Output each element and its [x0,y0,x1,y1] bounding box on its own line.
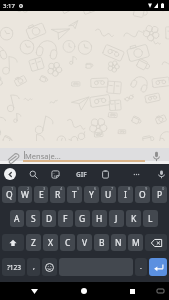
button[interactable]: Comma [27,258,40,276]
staticText: H [96,213,103,225]
staticText: 1 [11,186,14,191]
staticText: T [72,189,77,201]
button[interactable]: Switch keyboard [153,284,167,298]
button[interactable]: L [143,210,158,227]
staticText: G [79,213,86,225]
staticText: B [99,237,105,249]
staticText: V [82,237,88,249]
button[interactable]: Backspace [145,234,167,251]
button[interactable]: Period [135,258,147,276]
button[interactable]: Search [25,166,41,182]
staticText: 0 [162,186,165,191]
staticText: Y [89,189,94,201]
staticText: D [46,213,53,225]
button[interactable]: J [109,210,124,227]
staticText: 9 [145,186,148,191]
staticText: ?123 [7,263,21,272]
button[interactable]: Shift [2,234,24,251]
staticText: , [33,262,35,272]
staticText: L [148,213,153,225]
button[interactable]: N [111,234,126,251]
button[interactable]: Stickers [47,166,63,182]
staticText: 4 [60,186,63,191]
staticText: K [131,213,137,225]
button[interactable]: A [10,210,24,227]
staticText: 3 [43,186,46,191]
button[interactable]: W [18,186,32,203]
button[interactable]: Voice message [147,147,165,165]
button[interactable]: D [42,210,56,227]
staticText: W [21,189,29,201]
button[interactable]: V [77,234,92,251]
button[interactable]: Emoji [42,258,57,276]
staticText: E [39,189,44,201]
staticText: 5 [77,186,80,191]
button[interactable]: Back [4,168,16,180]
button[interactable]: H [92,210,107,227]
staticText: X [48,237,53,249]
staticText: GIF [76,170,87,179]
button[interactable]: G [75,210,90,227]
button[interactable]: U [101,186,116,203]
staticText: 7 [111,186,114,191]
button[interactable]: Home [75,282,93,300]
staticText: O [139,189,146,201]
button[interactable]: M [128,234,143,251]
button[interactable]: Clipboard [97,166,113,182]
button[interactable]: P [152,186,167,203]
button[interactable]: S [26,210,40,227]
button[interactable]: GIF [73,166,89,182]
button[interactable]: O [135,186,150,203]
staticText: 3:17 [3,2,15,10]
staticText: 2 [27,186,30,191]
button[interactable]: F [58,210,73,227]
button[interactable]: Hide keyboard [25,282,43,300]
button[interactable]: Z [26,234,41,251]
staticText: J [115,213,118,225]
button[interactable]: Q [2,186,16,203]
staticText: A [14,213,20,225]
staticText: N [115,237,122,249]
button[interactable]: X [43,234,58,251]
button[interactable]: R [50,186,65,203]
staticText: C [65,237,71,249]
button[interactable]: Voice input [153,166,169,182]
staticText: Mensaje... [25,151,61,161]
staticText: . [140,262,142,272]
staticText: I [124,189,127,201]
staticText: R [55,189,61,201]
button[interactable]: Recents [123,282,141,300]
staticText: U [105,189,112,201]
button[interactable]: More options [128,166,144,182]
staticText: Q [6,189,13,201]
button[interactable]: B [94,234,109,251]
button[interactable]: K [126,210,141,227]
button[interactable]: Y [84,186,99,203]
button[interactable]: Attach [3,149,21,167]
button[interactable]: ?123 [2,258,25,276]
staticText: Z [31,237,36,249]
staticText: M [132,237,140,249]
staticText: S [31,213,36,225]
staticText: F [63,213,68,225]
button[interactable]: C [60,234,75,251]
button[interactable]: E [34,186,48,203]
button[interactable]: Enter [149,258,167,276]
staticText: 8 [128,186,131,191]
button[interactable]: I [118,186,133,203]
staticText: P [157,189,163,201]
button[interactable]: T [67,186,82,203]
staticText: 6 [94,186,97,191]
